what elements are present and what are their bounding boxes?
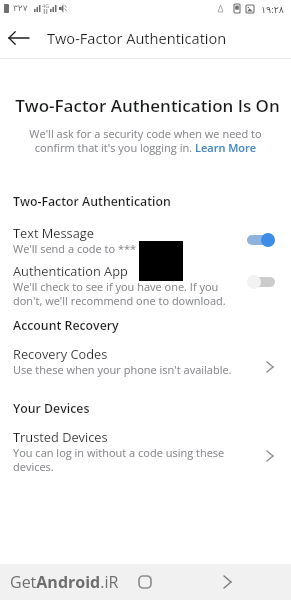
staticText: Use these when your phone isn't availabl… (13, 362, 232, 377)
button[interactable]: Authentication App (13, 262, 231, 308)
button[interactable]: Recovery Codes (13, 345, 263, 377)
button[interactable]: Open (259, 445, 281, 467)
staticText: Recovery Codes (13, 345, 108, 362)
staticText: Two-Factor Authentication (13, 193, 171, 210)
button[interactable]: Text Message (13, 224, 245, 256)
staticText: You can log in without a code using thes… (13, 445, 228, 474)
staticText: We'll check to see if you have one. If y… (13, 279, 231, 308)
staticText: Trusted Devices (13, 428, 108, 445)
staticText: 4G (42, 2, 50, 9)
staticText: We'll ask for a security code when we ne… (24, 126, 267, 155)
button[interactable]: Back (213, 568, 241, 596)
staticText: ۳۲۷ (13, 3, 28, 13)
staticText: Your Devices (13, 400, 90, 417)
button[interactable]: Back (0, 19, 38, 57)
staticText: Two-Factor Authentication (47, 28, 227, 48)
button[interactable]: Trusted Devices (13, 428, 228, 474)
staticText: GetAndroid.iR (10, 571, 119, 593)
staticText: Two-Factor Authentication Is On (2, 94, 291, 117)
staticText: ۱۹:۲۸ (261, 3, 284, 16)
button[interactable]: Text Message toggle (247, 231, 275, 249)
button[interactable]: Home (131, 568, 159, 596)
staticText: We'll send a code to *** (13, 241, 137, 256)
button[interactable]: Authentication App toggle (247, 273, 275, 291)
staticText: Account Recovery (13, 317, 119, 334)
staticText: Text Message (13, 224, 94, 241)
staticText: Authentication App (13, 262, 128, 279)
button[interactable]: Open (259, 356, 281, 378)
